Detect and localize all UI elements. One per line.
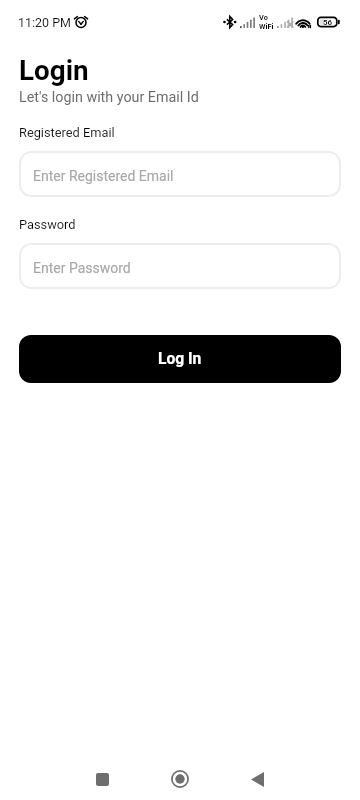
staticText: Registered Email [19, 125, 115, 140]
staticText: Password [19, 217, 76, 232]
button[interactable]: Enter Password [19, 243, 341, 289]
button[interactable]: Recents [87, 764, 117, 794]
staticText: Vo [259, 13, 268, 22]
button[interactable]: Back [242, 764, 272, 794]
staticText: WiFi [259, 22, 274, 31]
button[interactable]: Log In [19, 335, 341, 383]
staticText: Log In [158, 350, 202, 368]
button[interactable]: Home [165, 764, 195, 794]
staticText: Enter Registered Email [33, 168, 174, 184]
staticText: 11:20 PM [18, 15, 72, 30]
staticText: Login [19, 54, 89, 87]
button[interactable]: Enter Registered Email [19, 151, 341, 197]
staticText: 56 [323, 18, 333, 27]
staticText: Let's login with your Email Id [19, 89, 199, 106]
staticText: Enter Password [33, 260, 131, 276]
